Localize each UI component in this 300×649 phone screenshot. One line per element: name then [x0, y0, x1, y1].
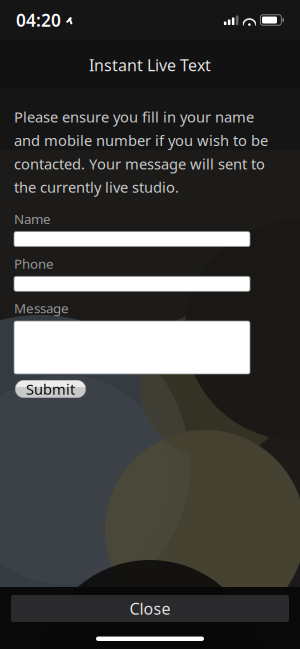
- staticText: Phone: [14, 255, 54, 272]
- button[interactable]: Submit: [15, 380, 86, 398]
- staticText: Message: [14, 299, 69, 317]
- staticText: Close: [129, 598, 170, 619]
- staticText: 04:20: [16, 8, 61, 31]
- staticText: Please ensure you fill in your name and …: [14, 107, 268, 197]
- button[interactable]: Close: [11, 595, 289, 622]
- staticText: Submit: [26, 379, 75, 399]
- staticText: Instant Live Text: [89, 54, 211, 76]
- staticText: Name: [14, 210, 51, 228]
